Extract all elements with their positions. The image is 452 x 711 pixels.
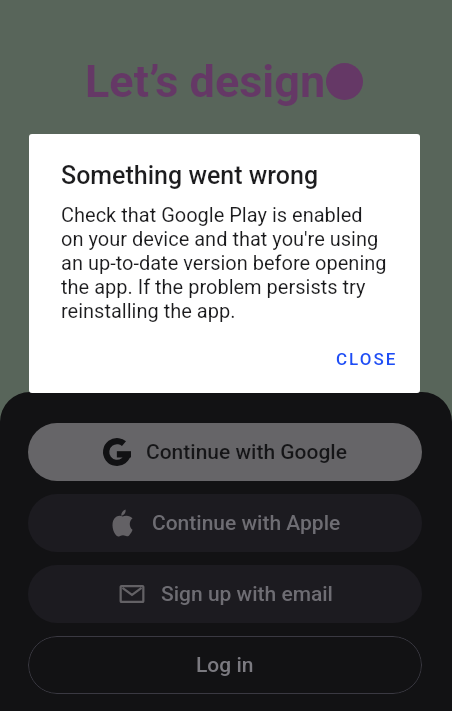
staticText: Check that Google Play is enabled on you… (61, 203, 388, 323)
button[interactable]: Log in (28, 636, 422, 694)
other: Email (118, 580, 146, 608)
staticText: Continue with Apple (152, 511, 341, 536)
staticText: Sign up with email (161, 582, 333, 607)
staticText: Log in (196, 653, 254, 678)
staticText: Let’s design (85, 55, 326, 108)
staticText: Something went wrong (61, 161, 319, 190)
other: Google (103, 438, 131, 466)
button[interactable]: Email (28, 565, 422, 623)
other: Apple (110, 509, 135, 537)
staticText: CLOSE (336, 349, 398, 369)
button[interactable]: Apple (28, 494, 422, 552)
button[interactable]: Google (28, 423, 422, 481)
button[interactable]: CLOSE (328, 342, 406, 376)
staticText: Continue with Google (146, 440, 347, 465)
